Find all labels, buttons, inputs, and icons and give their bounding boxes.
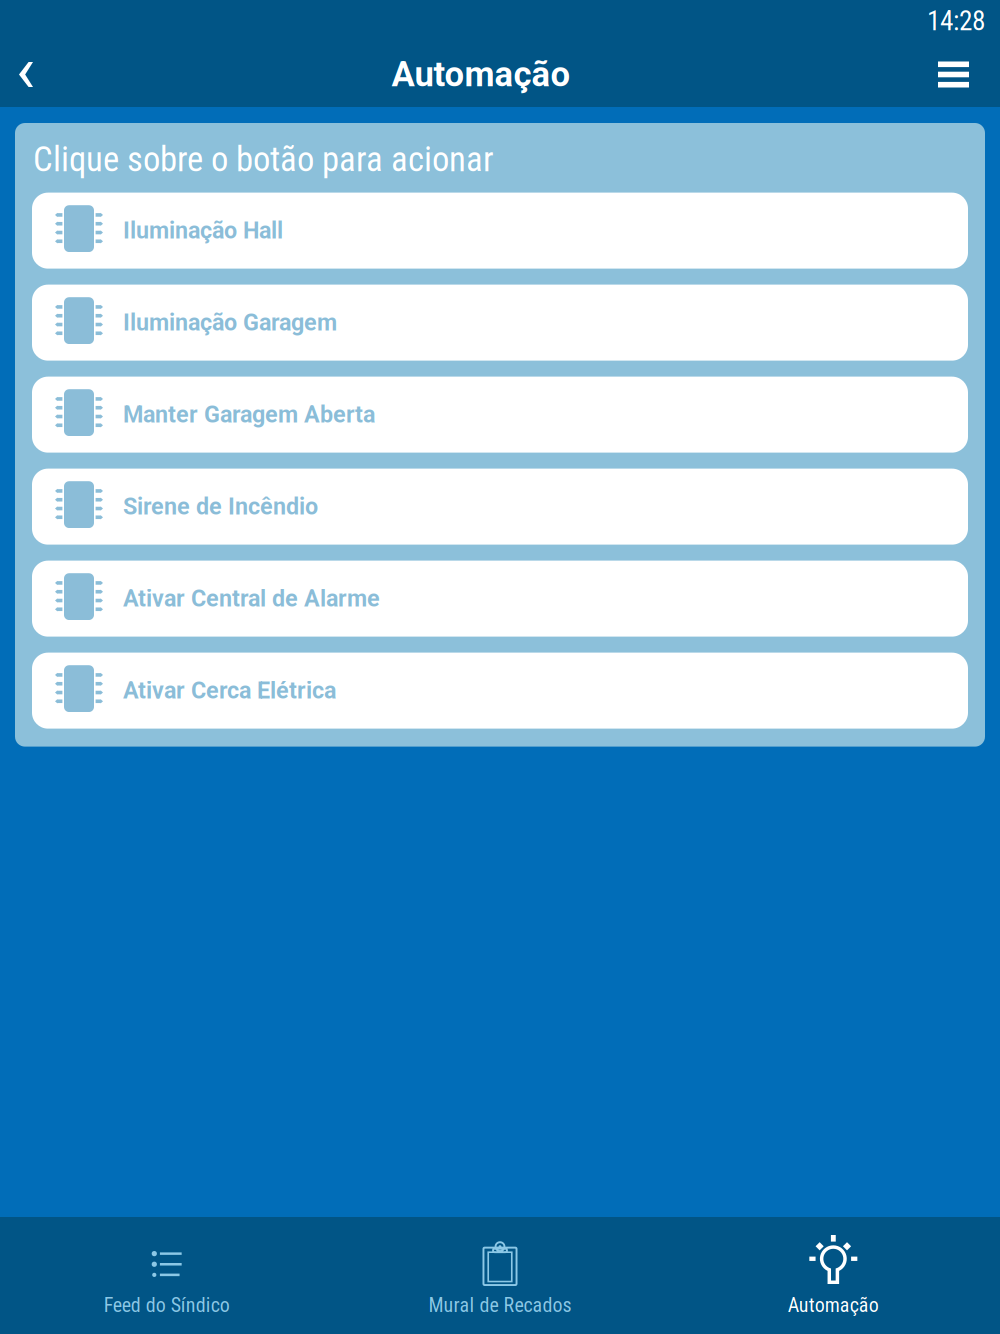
staticText: Ativar Cerca Elétrica xyxy=(123,677,336,704)
button[interactable]: Sirene de Incêndio xyxy=(32,469,968,545)
staticText: Manter Garagem Aberta xyxy=(123,401,375,428)
staticText: Clique sobre o botão para acionar xyxy=(33,139,494,180)
staticText: Ativar Central de Alarme xyxy=(123,585,380,612)
button[interactable]: Menu xyxy=(910,42,1000,107)
button[interactable]: Ativar Cerca Elétrica xyxy=(32,653,968,729)
button[interactable]: Back xyxy=(0,42,61,107)
button[interactable]: Iluminação Hall xyxy=(32,193,968,269)
button[interactable]: Automação xyxy=(667,1217,1000,1334)
staticText: Mural de Recados xyxy=(428,1294,571,1317)
button[interactable]: Feed do Síndico xyxy=(0,1217,333,1334)
button[interactable]: Manter Garagem Aberta xyxy=(32,377,968,453)
staticText: 14:28 xyxy=(927,5,985,37)
staticText: Automação xyxy=(788,1294,879,1317)
button[interactable]: Mural de Recados xyxy=(333,1217,667,1334)
staticText: Iluminação Hall xyxy=(123,217,283,244)
staticText: Feed do Síndico xyxy=(104,1294,230,1317)
staticText: Sirene de Incêndio xyxy=(123,493,318,520)
staticText: Iluminação Garagem xyxy=(123,309,337,336)
staticText: Automação xyxy=(391,54,570,95)
button[interactable]: Ativar Central de Alarme xyxy=(32,561,968,637)
button[interactable]: Iluminação Garagem xyxy=(32,285,968,361)
